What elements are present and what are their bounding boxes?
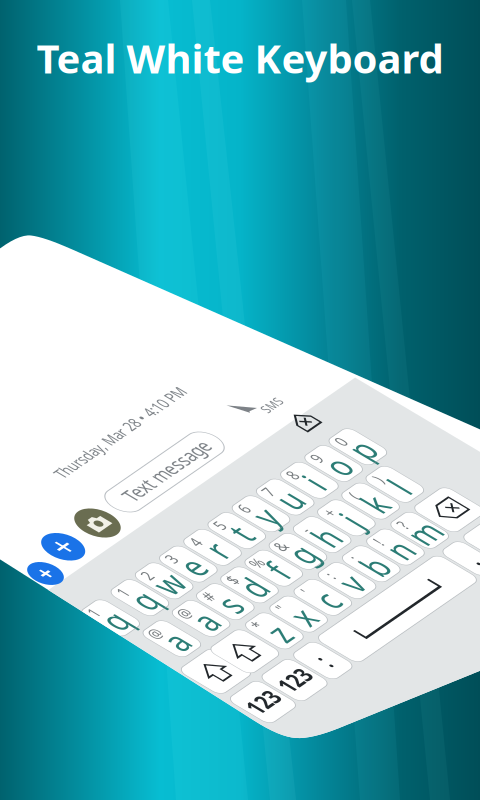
- button[interactable]: !: [235, 101, 268, 143]
- button[interactable]: +: [235, 53, 268, 95]
- staticText: $: [98, 51, 106, 71]
- button[interactable]: 2: [37, 5, 70, 47]
- staticText: i: [266, 9, 274, 51]
- staticText: f: [138, 57, 149, 99]
- staticText: #: [61, 51, 70, 71]
- button[interactable]: 5: [145, 5, 178, 47]
- staticText: %: [132, 51, 144, 71]
- button[interactable]: ;: [199, 101, 232, 143]
- staticText: m: [273, 105, 303, 147]
- button[interactable]: $: [91, 53, 124, 95]
- staticText: -: [207, 51, 212, 71]
- staticText: n: [242, 105, 262, 147]
- button[interactable]: ': [127, 101, 160, 143]
- staticText: s: [64, 57, 79, 99]
- staticText: h: [206, 57, 226, 99]
- staticText: 6: [188, 3, 196, 23]
- button[interactable]: ?: [271, 101, 304, 143]
- button[interactable]: &: [163, 53, 196, 95]
- staticText: y: [190, 9, 206, 51]
- button[interactable]: ": [91, 101, 124, 143]
- staticText: p: [332, 9, 352, 51]
- staticText: v: [172, 105, 188, 147]
- button[interactable]: [91, 149, 273, 191]
- button[interactable]: 8: [253, 5, 286, 47]
- button[interactable]: #: [55, 53, 88, 95]
- staticText: ): [316, 51, 320, 71]
- button[interactable]: [307, 149, 357, 191]
- button[interactable]: 123: [7, 149, 51, 191]
- button[interactable]: ): [307, 53, 340, 95]
- staticText: Teal White Keyboard: [36, 31, 443, 84]
- staticText: g: [170, 57, 190, 99]
- button[interactable]: :: [163, 101, 196, 143]
- button[interactable]: [307, 101, 357, 143]
- staticText: a: [27, 57, 45, 99]
- button[interactable]: 6: [181, 5, 214, 47]
- staticText: +: [242, 51, 250, 71]
- button[interactable]: 3: [73, 5, 106, 47]
- staticText: k: [279, 57, 296, 99]
- staticText: w: [41, 9, 66, 51]
- staticText: t: [156, 9, 168, 51]
- button[interactable]: -: [199, 53, 232, 95]
- staticText: q: [8, 9, 28, 51]
- staticText: e: [81, 9, 99, 51]
- button[interactable]: 0: [325, 5, 358, 47]
- staticText: l: [320, 57, 328, 99]
- staticText: r: [119, 9, 132, 51]
- button[interactable]: 9: [289, 5, 322, 47]
- button[interactable]: 1: [1, 5, 34, 47]
- staticText: (: [280, 51, 284, 71]
- button[interactable]: *: [55, 101, 88, 143]
- button[interactable]: .: [276, 149, 304, 191]
- staticText: &: [168, 51, 179, 71]
- staticText: 4: [116, 3, 124, 23]
- button[interactable]: [4, 101, 52, 143]
- staticText: d: [98, 57, 118, 99]
- button[interactable]: @: [19, 53, 52, 95]
- staticText: b: [206, 105, 226, 147]
- button[interactable]: 4: [109, 5, 142, 47]
- staticText: 123: [11, 156, 47, 184]
- button[interactable]: (: [271, 53, 304, 95]
- button[interactable]: :: [54, 149, 88, 191]
- button[interactable]: %: [127, 53, 160, 95]
